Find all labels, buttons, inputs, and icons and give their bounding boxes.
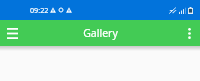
button[interactable]: Open navigation drawer xyxy=(0,21,24,45)
staticText: 09:22 xyxy=(30,5,49,15)
button[interactable]: More options xyxy=(178,22,200,44)
staticText: Gallery xyxy=(83,26,118,40)
